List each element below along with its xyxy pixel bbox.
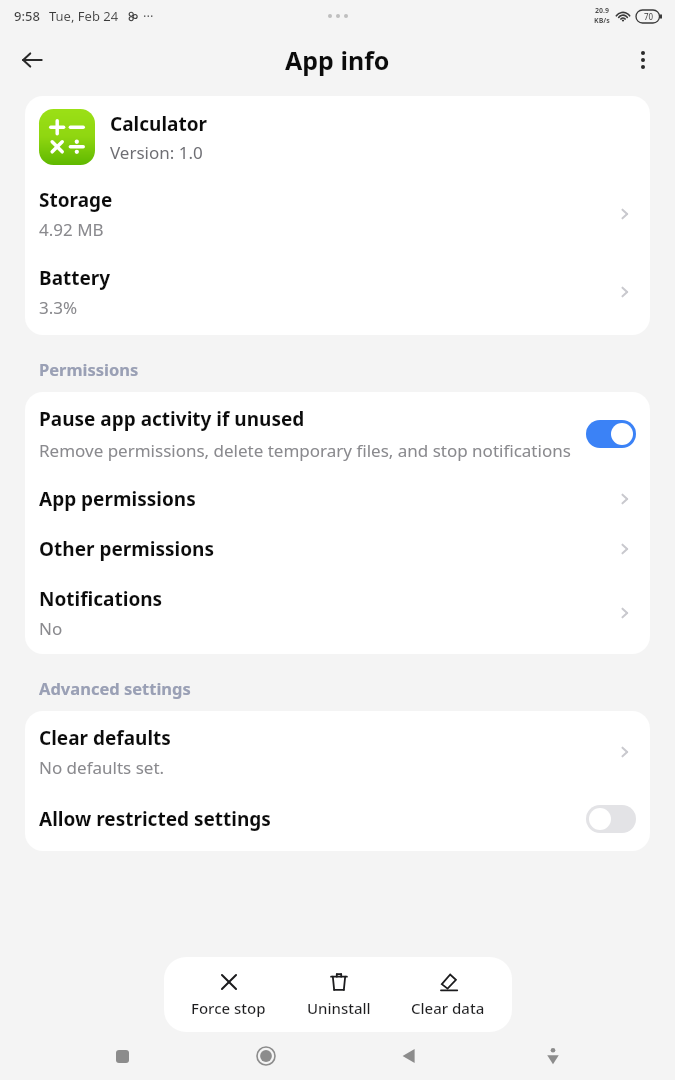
staticText: Notifications xyxy=(39,586,163,612)
button[interactable]: Clear data xyxy=(397,969,499,1020)
button[interactable]: Uninstall xyxy=(293,969,385,1020)
staticText: Other permissions xyxy=(39,536,214,562)
staticText: Advanced settings xyxy=(39,677,191,699)
button[interactable]: Notifications xyxy=(25,574,650,654)
staticText: No xyxy=(39,617,63,640)
button[interactable]: Battery xyxy=(25,255,650,335)
button[interactable]: Other permissions xyxy=(25,524,650,574)
staticText: No defaults set. xyxy=(39,756,165,779)
staticText: Force stop xyxy=(191,998,266,1018)
button[interactable]: Download xyxy=(531,1034,575,1078)
button[interactable]: Calculator xyxy=(25,96,650,173)
staticText: Uninstall xyxy=(307,998,371,1018)
staticText: 70 xyxy=(644,11,654,22)
button[interactable]: Back xyxy=(10,38,54,82)
staticText: KB/s xyxy=(594,16,610,26)
staticText: Pause app activity if unused xyxy=(39,406,305,432)
button[interactable]: Allow restricted settings xyxy=(25,793,650,851)
staticText: 9:58 xyxy=(14,7,40,25)
button[interactable]: App permissions xyxy=(25,474,650,524)
staticText: Version: 1.0 xyxy=(110,141,203,164)
staticText: Clear data xyxy=(411,998,485,1018)
staticText: 4.92 MB xyxy=(39,218,104,241)
staticText: App info xyxy=(285,43,390,77)
button[interactable]: Toggle xyxy=(586,805,636,833)
staticText: Clear defaults xyxy=(39,725,171,751)
button[interactable]: Storage xyxy=(25,173,650,255)
button[interactable]: More options xyxy=(621,38,665,82)
staticText: App permissions xyxy=(39,486,196,512)
staticText: Battery xyxy=(39,265,111,291)
staticText: ··· xyxy=(143,7,154,25)
staticText: Permissions xyxy=(39,358,139,380)
staticText: 20.9 xyxy=(595,6,609,16)
button[interactable]: Toggle xyxy=(586,420,636,448)
staticText: Allow restricted settings xyxy=(39,806,586,832)
button[interactable]: Clear defaults xyxy=(25,711,650,793)
staticText: Remove permissions, delete temporary fil… xyxy=(39,439,571,462)
staticText: Storage xyxy=(39,187,113,213)
button[interactable]: Home xyxy=(244,1034,288,1078)
button[interactable]: Back xyxy=(387,1034,431,1078)
button[interactable]: Pause app activity if unused xyxy=(25,392,650,474)
button[interactable]: Force stop xyxy=(177,969,280,1020)
button[interactable]: Recents xyxy=(100,1034,144,1078)
staticText: 3.3% xyxy=(39,296,78,319)
staticText: Calculator xyxy=(110,111,208,137)
staticText: Tue, Feb 24 xyxy=(49,7,119,25)
